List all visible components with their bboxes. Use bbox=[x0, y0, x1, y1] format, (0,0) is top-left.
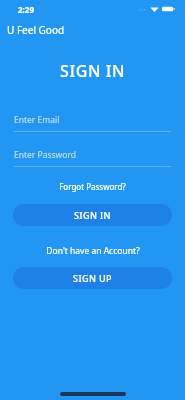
button[interactable]: SIGN UP bbox=[13, 267, 172, 289]
staticText: SIGN UP bbox=[73, 272, 112, 284]
button[interactable]: Enter Email bbox=[14, 114, 171, 132]
staticText: 2:29 bbox=[18, 4, 34, 15]
staticText: SIGN IN bbox=[0, 60, 185, 82]
staticText: Enter Email bbox=[14, 114, 60, 126]
button[interactable]: Don't have an Account? bbox=[0, 243, 185, 259]
button[interactable]: Enter Password bbox=[14, 149, 171, 167]
staticText: Forgot Password? bbox=[59, 181, 126, 192]
button[interactable]: Forgot Password? bbox=[0, 179, 185, 194]
button[interactable]: SIGN IN bbox=[13, 204, 172, 226]
staticText: U Feel Good bbox=[7, 23, 65, 37]
staticText: SIGN IN bbox=[74, 209, 111, 221]
staticText: Enter Password bbox=[14, 149, 77, 161]
staticText: Don't have an Account? bbox=[46, 245, 140, 257]
